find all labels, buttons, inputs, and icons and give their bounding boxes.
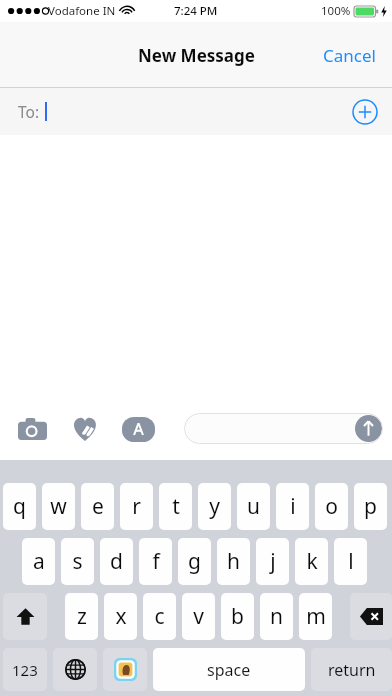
staticText: i <box>290 492 296 521</box>
staticText: return <box>328 659 376 681</box>
staticText: 123 <box>12 660 38 680</box>
staticText: h <box>227 547 240 576</box>
button[interactable]: v <box>182 593 215 640</box>
button[interactable]: z <box>65 593 98 640</box>
staticText: z <box>77 602 87 631</box>
staticText: r <box>132 492 141 521</box>
staticText: o <box>325 492 338 521</box>
button[interactable]: o <box>315 483 348 530</box>
button[interactable]: e <box>81 483 114 530</box>
button[interactable]: a <box>22 538 55 585</box>
button[interactable]: d <box>100 538 133 585</box>
button[interactable]: j <box>256 538 289 585</box>
button[interactable]: r <box>120 483 153 530</box>
staticText: j <box>270 547 276 576</box>
button[interactable]: l <box>334 538 367 585</box>
staticText: Vodafone IN <box>48 3 116 19</box>
button[interactable]: f <box>139 538 172 585</box>
button[interactable]: y <box>198 483 231 530</box>
button[interactable]: Shift <box>3 593 47 640</box>
button[interactable]: i <box>276 483 309 530</box>
staticText: n <box>270 602 283 631</box>
staticText: 7:24 PM <box>174 3 218 19</box>
staticText: q <box>13 492 26 521</box>
button[interactable]: h <box>217 538 250 585</box>
staticText: s <box>72 547 83 576</box>
staticText: y <box>209 492 220 521</box>
staticText: 100% <box>321 3 351 19</box>
staticText: v <box>193 602 204 631</box>
staticText: u <box>247 492 260 521</box>
button[interactable]: Camera <box>14 411 50 447</box>
button[interactable]: space <box>153 648 305 691</box>
staticText: b <box>231 602 244 631</box>
button[interactable]: c <box>143 593 176 640</box>
button[interactable]: b <box>221 593 254 640</box>
button[interactable]: Digital Touch <box>67 411 103 447</box>
button[interactable]: 123 <box>3 648 47 691</box>
button[interactable]: t <box>159 483 192 530</box>
button[interactable]: return <box>311 648 392 691</box>
staticText: Cancel <box>323 44 376 67</box>
staticText: To: <box>18 101 40 122</box>
button[interactable]: u <box>237 483 270 530</box>
button[interactable]: s <box>61 538 94 585</box>
staticText: e <box>92 492 104 521</box>
button[interactable]: Cancel <box>307 32 392 79</box>
staticText: c <box>154 602 165 631</box>
button[interactable]: Backspace <box>350 593 392 640</box>
staticText: w <box>50 492 67 521</box>
button[interactable]: w <box>42 483 75 530</box>
button[interactable]: p <box>354 483 387 530</box>
button[interactable]: q <box>3 483 36 530</box>
staticText: m <box>306 602 326 631</box>
staticText: a <box>33 547 45 576</box>
button[interactable]: x <box>104 593 137 640</box>
button[interactable]: App Store <box>120 411 156 447</box>
button[interactable]: g <box>178 538 211 585</box>
button[interactable]: Emoji <box>103 648 147 691</box>
button[interactable]: Change keyboard <box>53 648 97 691</box>
staticText: d <box>110 547 123 576</box>
button[interactable]: m <box>299 593 332 640</box>
staticText: x <box>115 602 127 631</box>
staticText: New Message <box>138 44 255 67</box>
staticText: space <box>207 659 251 681</box>
staticText: k <box>306 547 318 576</box>
button[interactable]: Add contact <box>352 99 378 125</box>
button[interactable]: k <box>295 538 328 585</box>
staticText: p <box>364 492 377 521</box>
button[interactable]: Message field <box>184 413 383 444</box>
button[interactable]: n <box>260 593 293 640</box>
staticText: f <box>152 547 160 576</box>
staticText: g <box>188 547 201 576</box>
staticText: t <box>172 492 180 521</box>
staticText: l <box>348 547 354 576</box>
